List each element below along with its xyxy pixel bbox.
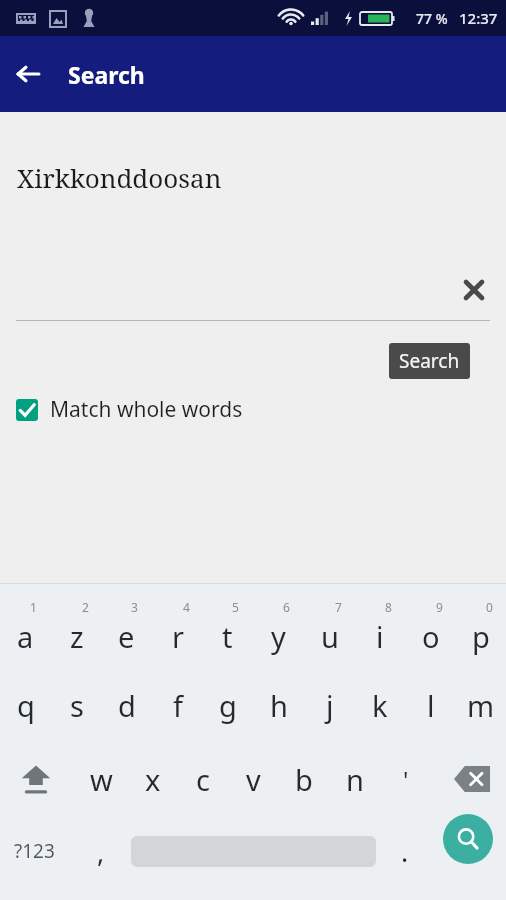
button[interactable]: 9 bbox=[405, 588, 456, 666]
button[interactable]: Clear text bbox=[452, 268, 496, 312]
staticText: q bbox=[17, 686, 35, 725]
staticText: Search bbox=[68, 59, 145, 90]
staticText: 2 bbox=[82, 599, 89, 615]
staticText: b bbox=[295, 760, 313, 799]
staticText: 12:37 bbox=[459, 8, 498, 28]
button[interactable]: s bbox=[51, 669, 102, 742]
staticText: r bbox=[172, 617, 184, 656]
staticText: 4 bbox=[183, 599, 190, 615]
staticText: ' bbox=[403, 763, 409, 796]
button[interactable]: v bbox=[228, 744, 279, 814]
button[interactable]: 5 bbox=[202, 588, 253, 666]
staticText: l bbox=[427, 686, 435, 725]
staticText: 8 bbox=[385, 599, 392, 615]
button[interactable]: Space bbox=[131, 816, 376, 886]
button[interactable]: c bbox=[177, 744, 228, 814]
button[interactable]: 0 bbox=[455, 588, 506, 666]
staticText: u bbox=[321, 617, 339, 656]
staticText: Xirkkonddoosan bbox=[17, 160, 222, 195]
staticText: 77 % bbox=[416, 9, 448, 28]
staticText: o bbox=[422, 617, 440, 656]
staticText: Match whole words bbox=[50, 395, 243, 424]
button[interactable]: n bbox=[329, 744, 380, 814]
staticText: . bbox=[401, 833, 409, 870]
button[interactable]: , bbox=[78, 816, 124, 886]
staticText: p bbox=[472, 617, 490, 656]
staticText: z bbox=[70, 617, 84, 656]
staticText: 9 bbox=[436, 599, 443, 615]
button[interactable]: 7 bbox=[304, 588, 355, 666]
button[interactable]: 4 bbox=[152, 588, 203, 666]
button[interactable]: k bbox=[354, 669, 405, 742]
staticText: y bbox=[271, 617, 286, 656]
staticText: 7 bbox=[335, 599, 342, 615]
staticText: Search bbox=[399, 348, 460, 374]
staticText: w bbox=[90, 760, 113, 799]
staticText: i bbox=[376, 617, 384, 656]
staticText: c bbox=[196, 760, 210, 799]
button[interactable]: g bbox=[202, 669, 253, 742]
staticText: n bbox=[346, 760, 364, 799]
button[interactable]: w bbox=[76, 744, 127, 814]
staticText: e bbox=[118, 617, 135, 656]
button[interactable]: b bbox=[278, 744, 329, 814]
button[interactable]: x bbox=[127, 744, 178, 814]
staticText: x bbox=[145, 760, 161, 799]
staticText: f bbox=[173, 686, 183, 725]
staticText: g bbox=[219, 686, 237, 725]
button[interactable]: ' bbox=[380, 744, 431, 814]
button[interactable]: 2 bbox=[51, 588, 102, 666]
button[interactable]: 3 bbox=[101, 588, 152, 666]
staticText: 6 bbox=[283, 599, 290, 615]
staticText: ?123 bbox=[14, 838, 55, 864]
button[interactable]: Match whole words bbox=[14, 395, 251, 424]
button[interactable]: h bbox=[253, 669, 304, 742]
staticText: 0 bbox=[486, 599, 493, 615]
staticText: j bbox=[326, 686, 334, 725]
button[interactable]: Shift bbox=[5, 744, 67, 814]
staticText: 1 bbox=[30, 599, 37, 615]
staticText: 3 bbox=[131, 599, 138, 615]
button[interactable]: l bbox=[405, 669, 456, 742]
button[interactable]: 1 bbox=[0, 588, 51, 666]
button[interactable]: 6 bbox=[253, 588, 304, 666]
staticText: m bbox=[467, 686, 495, 725]
staticText: d bbox=[118, 686, 136, 725]
staticText: s bbox=[70, 686, 84, 725]
staticText: h bbox=[270, 686, 288, 725]
button[interactable]: f bbox=[152, 669, 203, 742]
button[interactable]: Search bbox=[443, 814, 493, 864]
button[interactable]: d bbox=[101, 669, 152, 742]
button[interactable]: q bbox=[0, 669, 51, 742]
staticText: a bbox=[17, 617, 34, 656]
staticText: t bbox=[222, 617, 233, 656]
button[interactable]: Search bbox=[389, 343, 470, 379]
staticText: 5 bbox=[232, 599, 239, 615]
button[interactable]: j bbox=[304, 669, 355, 742]
button[interactable]: . bbox=[384, 816, 426, 886]
staticText: k bbox=[372, 686, 388, 725]
button[interactable]: Back bbox=[0, 46, 56, 102]
button[interactable]: ?123 bbox=[4, 816, 64, 886]
staticText: v bbox=[246, 760, 261, 799]
button[interactable]: 8 bbox=[354, 588, 405, 666]
button[interactable]: Backspace bbox=[443, 744, 501, 814]
staticText: , bbox=[97, 833, 105, 870]
button[interactable]: m bbox=[455, 669, 506, 742]
